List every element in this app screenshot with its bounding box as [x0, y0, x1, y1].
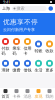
- staticText: 搜索: [16, 6, 24, 11]
- button[interactable]: 发现: [33, 88, 44, 100]
- staticText: 借钱: [23, 68, 31, 73]
- staticText: 更多: [45, 68, 53, 73]
- staticText: 乘车码: [12, 46, 20, 56]
- staticText: 我的: [45, 94, 53, 99]
- staticText: 收款: [45, 48, 53, 53]
- staticText: 信用卡: [23, 46, 31, 56]
- staticText: 卡券: [12, 94, 20, 99]
- staticText: 9:41: [3, 0, 10, 5]
- staticText: 优惠享不停: [3, 18, 38, 26]
- staticText: 付款码: [1, 46, 9, 56]
- button[interactable]: 搜索: [12, 6, 46, 11]
- button[interactable]: Scan: [48, 6, 53, 11]
- button[interactable]: 消息: [22, 88, 33, 100]
- staticText: 生活: [34, 68, 42, 73]
- staticText: 云闪付新用户专享: [3, 27, 35, 32]
- staticText: 缴费: [12, 68, 20, 73]
- staticText: 首页: [1, 94, 9, 99]
- button[interactable]: 卡券: [11, 88, 22, 100]
- staticText: 发现: [34, 94, 42, 99]
- button[interactable]: 我的: [44, 88, 55, 100]
- staticText: 转账: [34, 48, 42, 53]
- staticText: 理财: [1, 68, 9, 73]
- button[interactable]: 上海: [2, 6, 10, 11]
- button[interactable]: 首页: [0, 88, 11, 100]
- staticText: 上海: [2, 6, 10, 11]
- staticText: 消息: [23, 94, 31, 99]
